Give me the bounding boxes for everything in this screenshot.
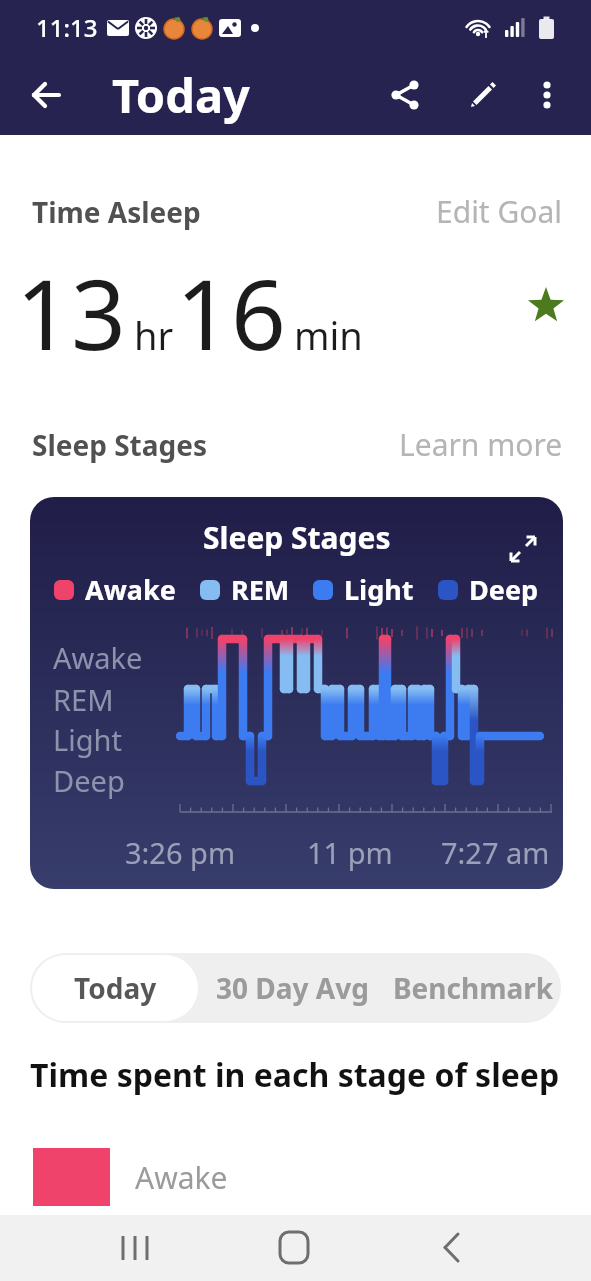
staticText: 30 Day Avg xyxy=(216,969,369,1007)
button[interactable] xyxy=(413,1215,493,1281)
staticText: Light xyxy=(344,571,414,608)
staticText: 11 pm xyxy=(307,833,393,872)
staticText: Light xyxy=(53,720,122,759)
staticText: Time Asleep xyxy=(32,193,201,231)
button[interactable] xyxy=(255,1215,335,1281)
button[interactable]: Learn more xyxy=(399,424,563,465)
staticText: Sleep Stages xyxy=(32,426,208,464)
staticText: Deep xyxy=(469,571,539,608)
staticText: min xyxy=(294,309,363,361)
staticText: Benchmark xyxy=(393,969,554,1007)
button[interactable] xyxy=(97,1215,177,1281)
button[interactable] xyxy=(12,61,80,129)
staticText: Today xyxy=(112,63,250,127)
button[interactable] xyxy=(523,63,571,127)
button[interactable]: Edit Goal xyxy=(436,191,563,232)
button[interactable] xyxy=(373,63,437,127)
button[interactable]: 30 Day Avg xyxy=(200,953,385,1023)
button[interactable] xyxy=(451,63,515,127)
staticText: Time spent in each stage of sleep xyxy=(30,1053,560,1097)
staticText: 13 xyxy=(16,247,126,378)
staticText: Awake xyxy=(135,1157,228,1198)
button[interactable]: Benchmark xyxy=(385,953,561,1023)
staticText: 7:27 am xyxy=(441,833,550,872)
staticText: Sleep Stages xyxy=(203,517,391,558)
staticText: Today xyxy=(74,969,157,1007)
button[interactable]: Sleep Stages xyxy=(30,497,563,889)
staticText: Awake xyxy=(53,638,143,677)
button[interactable]: Today xyxy=(32,955,198,1021)
staticText: hr xyxy=(134,309,174,361)
staticText: 3:26 pm xyxy=(125,833,236,872)
staticText: REM xyxy=(53,680,114,719)
staticText: REM xyxy=(231,571,290,608)
staticText: Deep xyxy=(53,761,125,800)
staticText: 11:13 xyxy=(36,11,98,44)
staticText: 16 xyxy=(176,247,286,378)
staticText: Awake xyxy=(85,571,176,608)
